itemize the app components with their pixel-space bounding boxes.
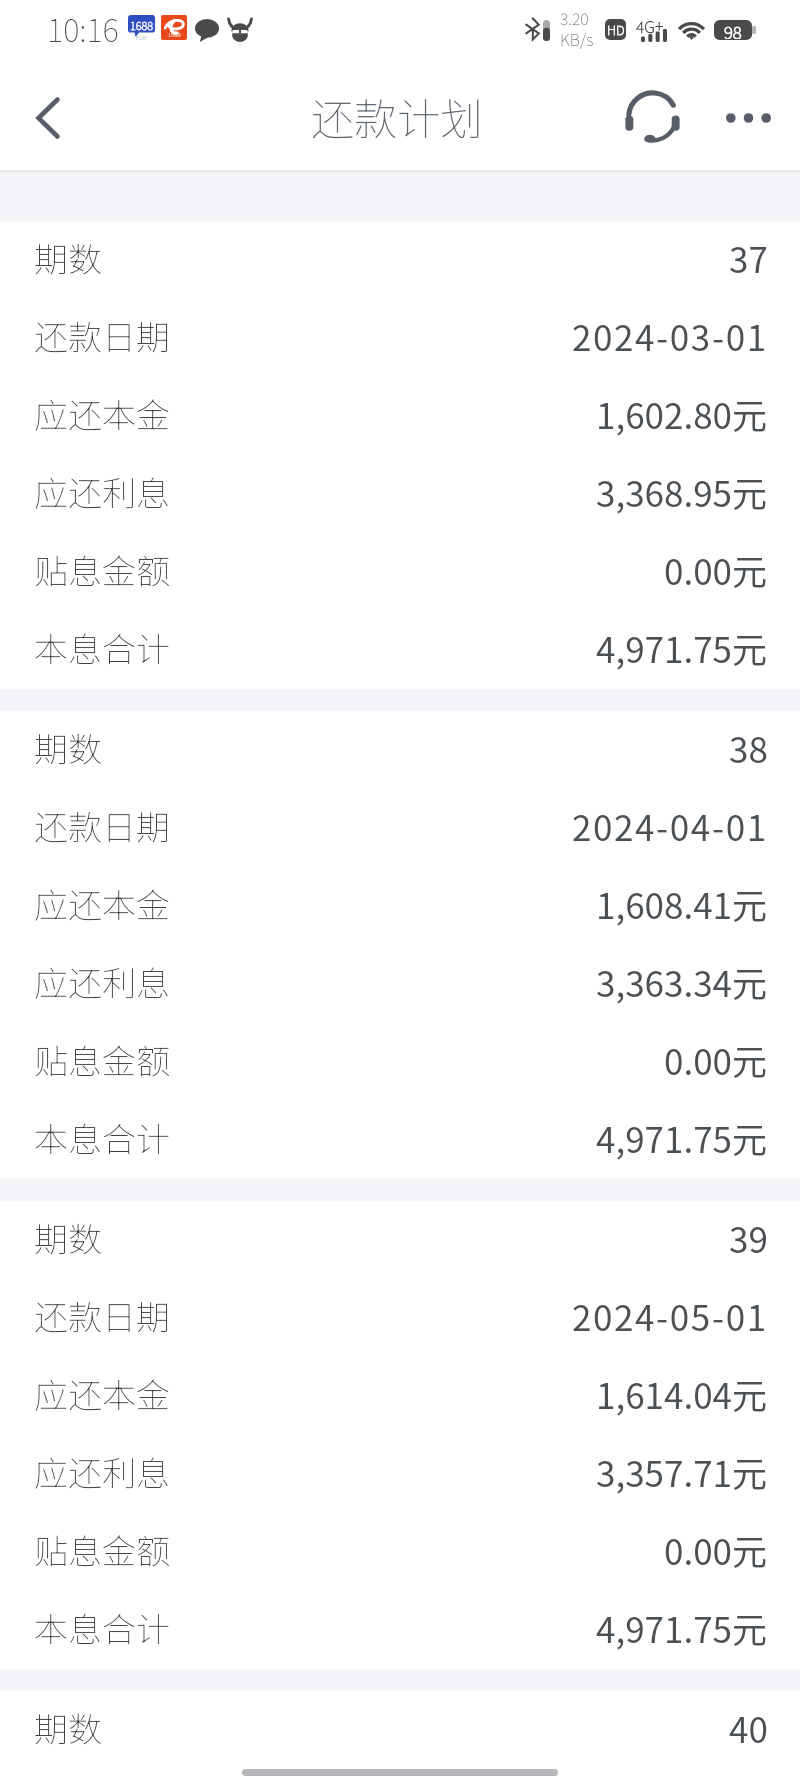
button[interactable]: 期数 (0, 221, 800, 299)
staticText: 贴息金额 (34, 1525, 170, 1574)
button[interactable]: 贴息金额 (0, 1513, 800, 1591)
button[interactable]: 期数 (0, 1691, 800, 1769)
button[interactable]: 应还利息 (0, 1435, 800, 1513)
button[interactable]: 还款日期 (0, 299, 800, 377)
staticText: 应还利息 (34, 467, 170, 516)
button[interactable]: 应还本金 (0, 377, 800, 455)
staticText: 还款计划 (311, 85, 483, 147)
button[interactable]: 还款日期 (0, 1279, 800, 1357)
staticText: 38 (729, 722, 768, 773)
staticText: 40 (729, 1702, 768, 1753)
staticText: 0.00元 (664, 1034, 768, 1085)
staticText: 应还利息 (34, 1447, 170, 1496)
staticText: 应还本金 (34, 1369, 170, 1418)
staticText: 37 (729, 232, 768, 283)
staticText: 应还本金 (34, 879, 170, 928)
button[interactable]: 应还利息 (0, 455, 800, 533)
staticText: 1688 (168, 30, 181, 39)
button[interactable]: Customer service (604, 66, 700, 170)
staticText: 期数 (34, 1703, 102, 1752)
staticText: 贴息金额 (34, 545, 170, 594)
staticText: 2024-04-01 (572, 800, 768, 851)
button[interactable]: Back (0, 66, 96, 170)
staticText: 4,971.75元 (596, 1112, 768, 1163)
staticText: 3,357.71元 (596, 1446, 768, 1497)
staticText: 期数 (34, 1213, 102, 1262)
staticText: 2024-03-01 (572, 310, 768, 361)
button[interactable]: 本息合计 (0, 611, 800, 689)
staticText: B2B (136, 33, 147, 42)
staticText: 98 (724, 19, 742, 39)
staticText: 3.20 KB/s (560, 6, 594, 50)
staticText: 1688 (130, 17, 153, 33)
button[interactable]: 应还本金 (0, 867, 800, 945)
staticText: 1,614.04元 (596, 1368, 768, 1419)
staticText: HD (607, 20, 625, 39)
staticText: 10:16 (47, 6, 119, 50)
button[interactable]: 本息合计 (0, 1591, 800, 1669)
button[interactable]: 还款日期 (0, 789, 800, 867)
staticText: 4G+ (636, 14, 664, 37)
staticText: 还款日期 (34, 311, 170, 360)
staticText: 3,368.95元 (596, 466, 768, 517)
staticText: 2024-05-01 (572, 1290, 768, 1341)
staticText: 3,363.34元 (596, 956, 768, 1007)
staticText: 应还利息 (34, 957, 170, 1006)
button[interactable]: 期数 (0, 711, 800, 789)
staticText: 期数 (34, 233, 102, 282)
button[interactable]: 应还本金 (0, 1357, 800, 1435)
staticText: 期数 (34, 723, 102, 772)
staticText: 本息合计 (34, 1113, 170, 1162)
button[interactable]: 贴息金额 (0, 1023, 800, 1101)
staticText: 0.00元 (664, 544, 768, 595)
staticText: 还款日期 (34, 1291, 170, 1340)
button[interactable]: More options (700, 66, 796, 170)
button[interactable]: 贴息金额 (0, 533, 800, 611)
staticText: 39 (729, 1212, 768, 1263)
staticText: 1,602.80元 (596, 388, 768, 439)
button[interactable]: 应还利息 (0, 945, 800, 1023)
button[interactable]: 期数 (0, 1201, 800, 1279)
staticText: 4,971.75元 (596, 1602, 768, 1653)
staticText: 本息合计 (34, 623, 170, 672)
staticText: 还款日期 (34, 801, 170, 850)
staticText: 本息合计 (34, 1603, 170, 1652)
staticText: 4,971.75元 (596, 622, 768, 673)
staticText: 应还本金 (34, 389, 170, 438)
staticText: 0.00元 (664, 1524, 768, 1575)
button[interactable]: 本息合计 (0, 1101, 800, 1179)
staticText: 贴息金额 (34, 1035, 170, 1084)
staticText: 1,608.41元 (596, 878, 768, 929)
